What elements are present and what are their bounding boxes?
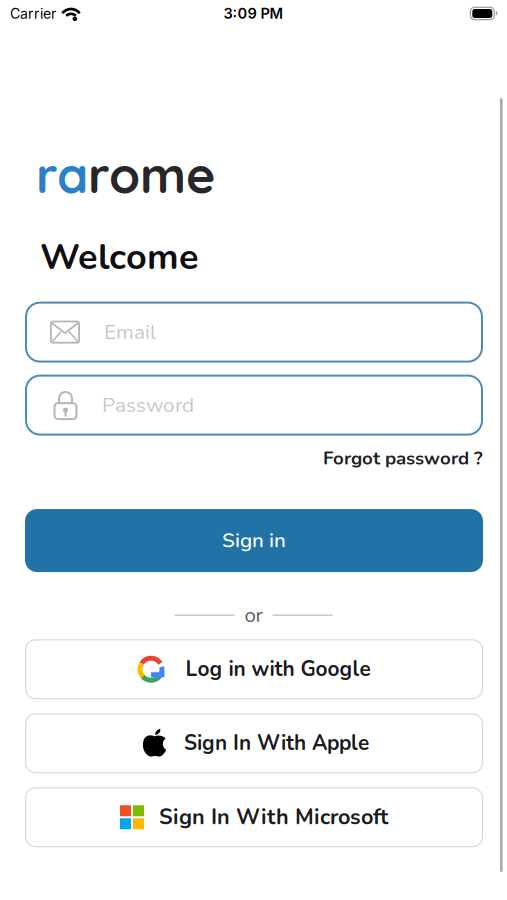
staticText: Forgot password ? [323,446,483,471]
staticText: Email [104,318,156,346]
staticText: or [244,601,262,629]
staticText: Password [102,391,194,419]
button[interactable]: Log in with Google [25,639,483,699]
button[interactable]: Sign In With Apple [25,713,483,773]
staticText: rome [88,143,216,205]
staticText: Sign in [222,527,286,555]
staticText: Welcome [40,232,199,282]
button[interactable]: Sign In With Microsoft [25,787,483,847]
button[interactable]: Email [25,302,483,363]
staticText: Sign In With Microsoft [159,802,388,832]
staticText: ra [36,143,88,205]
staticText: Carrier [10,5,56,22]
staticText: 3:09 PM [223,5,283,22]
button[interactable]: Password [25,375,483,436]
button[interactable]: Sign in [25,509,483,572]
button[interactable]: Forgot password ? [323,446,483,471]
staticText: Sign In With Apple [184,729,369,757]
staticText: Log in with Google [185,655,370,683]
